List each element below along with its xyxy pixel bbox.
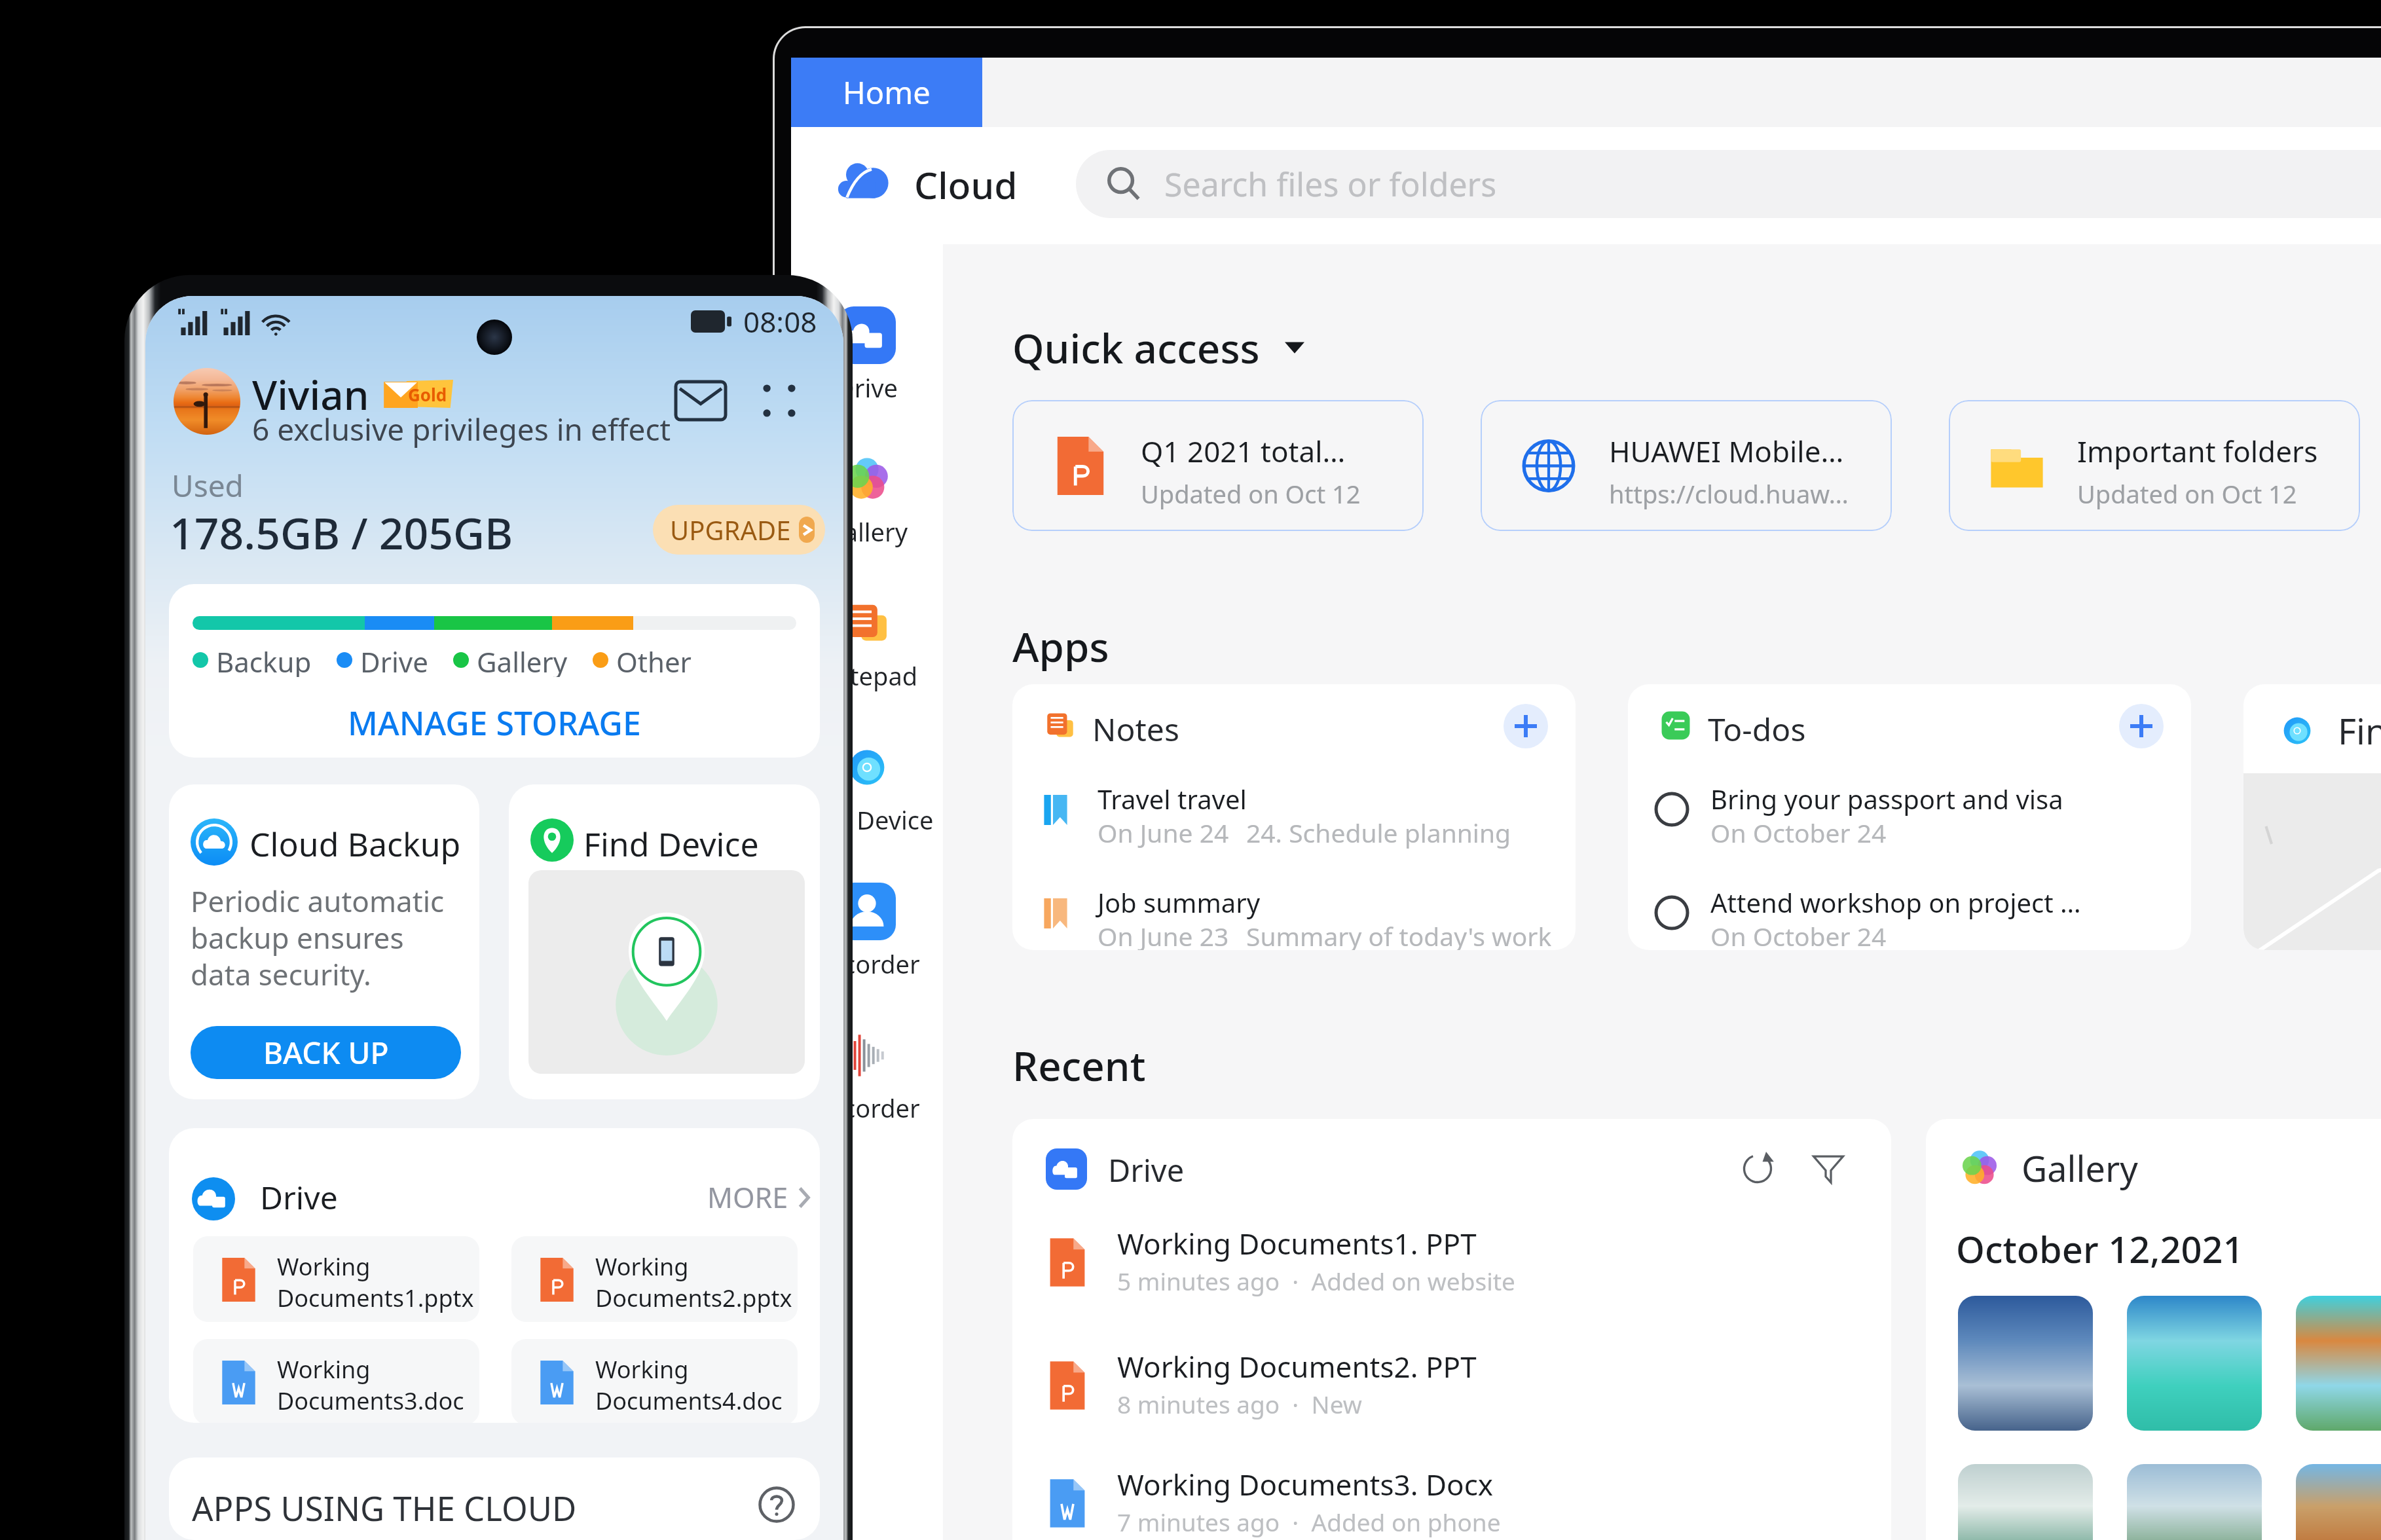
button[interactable]: Drive [791, 306, 943, 437]
staticText: On October 24 [1710, 919, 1887, 950]
button[interactable]: Help [756, 1484, 798, 1526]
staticText: Recent [1012, 1038, 1146, 1090]
staticText: BACK UP [263, 1032, 389, 1073]
staticText: Working Documents1. PPT [1117, 1224, 1477, 1263]
staticText: Other [616, 643, 692, 677]
button[interactable]: Working [193, 1339, 479, 1423]
button[interactable] [1958, 1296, 2093, 1431]
button[interactable]: Home [791, 58, 982, 127]
staticText: Working Documents3. Docx [1117, 1465, 1494, 1504]
staticText: Apps [1012, 619, 1109, 671]
button[interactable]: Travel travel [1012, 776, 1576, 874]
staticText: Notepad [816, 659, 918, 693]
staticText: To-dos [1708, 708, 1806, 750]
button[interactable]: MANAGE STORAGE [193, 682, 796, 758]
button[interactable] [1958, 1464, 2093, 1540]
button[interactable]: Find Device [791, 739, 943, 870]
staticText: APPS USING THE CLOUD [192, 1485, 577, 1530]
staticText: Drive [360, 643, 428, 677]
staticText: Gallery [826, 515, 908, 549]
staticText: Recorder [814, 1091, 920, 1125]
button[interactable]: Job summary [1012, 879, 1576, 950]
staticText: MANAGE STORAGE [348, 701, 641, 745]
button[interactable] [2296, 1296, 2381, 1431]
staticText: Gold [408, 383, 447, 406]
staticText: 24. Schedule planning [1246, 815, 1511, 850]
button[interactable]: Gallery [791, 450, 943, 581]
button[interactable]: Filter [1806, 1146, 1851, 1191]
button[interactable]: UPGRADE [653, 505, 825, 555]
staticText: Find Device [800, 803, 934, 837]
staticText: Drive [1108, 1149, 1185, 1191]
button[interactable]: Important folders [1949, 400, 2360, 531]
staticText: MORE [707, 1178, 788, 1217]
staticText: Recorder [814, 947, 920, 981]
staticText: Documents2.pptx [595, 1282, 792, 1314]
staticText: Gallery [2021, 1144, 2138, 1192]
button[interactable]: Refresh [1735, 1146, 1780, 1191]
staticText: On June 24 [1098, 815, 1229, 850]
staticText: Gallery [477, 643, 568, 677]
button[interactable]: Search files or folders [1076, 150, 2381, 218]
staticText: Search files or folders [1164, 162, 1497, 206]
button[interactable]: BACK UP [191, 1026, 461, 1079]
button[interactable]: Attend workshop on project … [1628, 879, 2191, 950]
staticText: Periodic automatic backup ensures data s… [191, 881, 466, 994]
staticText: https://cloud.huaw… [1609, 477, 1849, 511]
staticText: Quick access [1012, 320, 1260, 373]
button[interactable]: Working [511, 1339, 798, 1423]
staticText: Q1 2021 total… [1141, 431, 1346, 471]
button[interactable]: Notepad [791, 595, 943, 725]
button[interactable]: Working Documents2. PPT [1012, 1347, 1891, 1465]
staticText: Working [277, 1353, 371, 1385]
staticText: Drive [260, 1176, 338, 1219]
staticText: Working [595, 1353, 689, 1385]
button[interactable] [2296, 1464, 2381, 1540]
staticText: Attend workshop on project … [1710, 885, 2081, 920]
button[interactable] [174, 368, 240, 435]
staticText: Important folders [2077, 431, 2318, 471]
button[interactable]: Working Documents1. PPT [1012, 1224, 1891, 1342]
staticText: Home [843, 71, 931, 113]
button[interactable] [2127, 1296, 2262, 1431]
staticText: 8 minutes ago · New [1117, 1387, 1362, 1420]
staticText: Find Device [2338, 706, 2381, 755]
staticText: 5 minutes ago · Added on website [1117, 1264, 1515, 1297]
button[interactable]: HUAWEI Mobile… [1481, 400, 1892, 531]
staticText: Notes [1092, 708, 1179, 750]
staticText: Working Documents2. PPT [1117, 1347, 1477, 1386]
staticText: Documents1.pptx [277, 1282, 474, 1314]
button[interactable]: Working [511, 1236, 798, 1322]
staticText: Job summary [1098, 885, 1261, 920]
button[interactable]: MORE [707, 1178, 811, 1217]
staticText: UPGRADE [670, 512, 791, 547]
staticText: Documents4.doc [595, 1385, 783, 1417]
staticText: October 12,2021 [1956, 1224, 2244, 1274]
button[interactable]: Add note [1504, 704, 1548, 748]
staticText: 7 minutes ago · Added on phone [1117, 1505, 1501, 1538]
button[interactable]: More options [754, 376, 804, 426]
staticText: On June 23 [1098, 919, 1229, 950]
staticText: Used [172, 465, 244, 506]
staticText: Find Device [583, 822, 759, 866]
button[interactable]: Working Documents3. Docx [1012, 1465, 1891, 1540]
button[interactable]: Add to-do [2119, 704, 2164, 748]
staticText: HUAWEI Mobile… [1609, 431, 1844, 471]
button[interactable]: Recorder [791, 1027, 943, 1158]
staticText: Drive [836, 371, 898, 405]
button[interactable]: Recorder [791, 883, 943, 1014]
staticText: Cloud Backup [249, 822, 461, 866]
staticText: Vivian [252, 367, 369, 422]
staticText: Updated on Oct 12 [2077, 477, 2297, 511]
button[interactable] [2127, 1464, 2262, 1540]
button[interactable]: Messages [673, 373, 728, 428]
button[interactable]: Q1 2021 total… [1012, 400, 1424, 531]
staticText: Travel travel [1098, 781, 1247, 816]
staticText: Updated on Oct 12 [1141, 477, 1361, 511]
staticText: Working [595, 1251, 689, 1283]
staticText: Backup [216, 643, 312, 677]
button[interactable]: Working [193, 1236, 479, 1322]
staticText: Working [277, 1251, 371, 1283]
button[interactable]: Bring your passport and visa [1628, 776, 2191, 874]
staticText: 6 exclusive privileges in effect [252, 409, 671, 450]
